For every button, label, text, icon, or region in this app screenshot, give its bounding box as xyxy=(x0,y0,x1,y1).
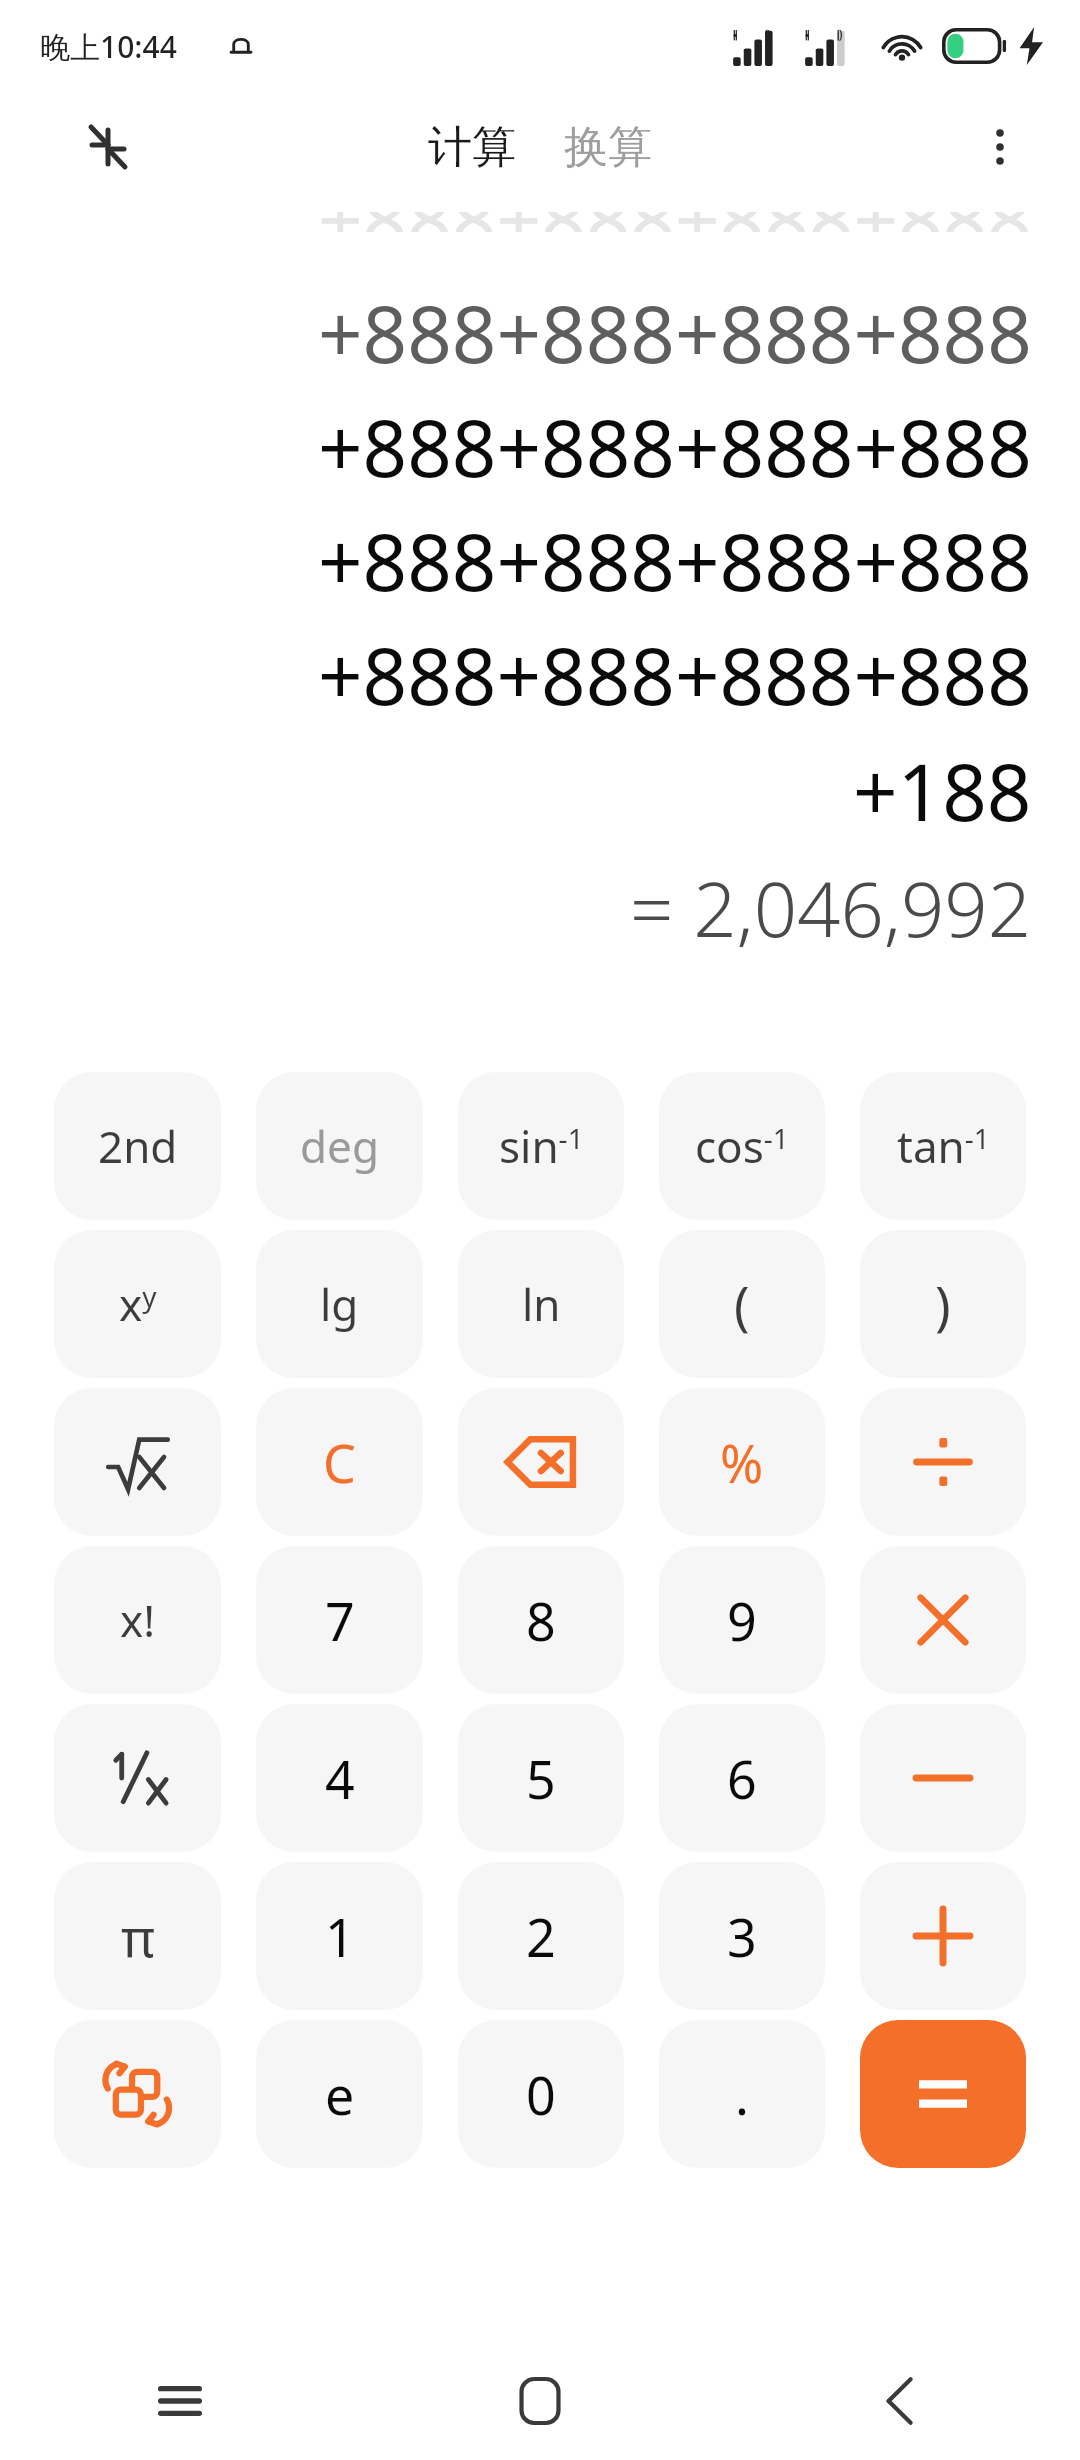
button[interactable]: x! xyxy=(54,1546,221,1694)
staticText: 换算 xyxy=(564,120,652,175)
staticText: lg xyxy=(320,1274,359,1334)
button[interactable]: 3 xyxy=(659,1862,825,2010)
button[interactable]: Backspace xyxy=(458,1388,624,1536)
staticText: 2nd xyxy=(98,1116,178,1176)
button[interactable]: Equals xyxy=(860,2020,1026,2168)
button[interactable]: Unit conversion xyxy=(54,2020,221,2168)
button[interactable]: C xyxy=(256,1388,423,1536)
button[interactable]: Square root xyxy=(54,1388,221,1536)
staticText: 6 xyxy=(727,1743,757,1814)
staticText: +888+888+888+888 xyxy=(318,280,1032,386)
staticText: = 2,046,992 xyxy=(630,856,1032,960)
staticText: 5 xyxy=(526,1743,556,1814)
button[interactable]: 8 xyxy=(458,1546,624,1694)
button[interactable]: 换算 xyxy=(554,112,662,183)
staticText: tan-1 xyxy=(897,1116,990,1176)
button[interactable]: Recent apps xyxy=(0,2342,360,2460)
button[interactable]: Divide xyxy=(860,1388,1026,1536)
button[interactable]: Plus xyxy=(860,1862,1026,2010)
button[interactable]: 2nd xyxy=(54,1072,221,1220)
staticText: 0 xyxy=(526,2059,556,2130)
staticText: 2 xyxy=(526,1901,556,1972)
staticText: 4 xyxy=(325,1743,355,1814)
staticText: C xyxy=(323,1427,356,1498)
button[interactable]: xy xyxy=(54,1230,221,1378)
button[interactable]: sin-1 xyxy=(458,1072,624,1220)
button[interactable]: cos-1 xyxy=(659,1072,825,1220)
button[interactable]: ln xyxy=(458,1230,624,1378)
button[interactable]: tan-1 xyxy=(860,1072,1026,1220)
button[interactable]: Back xyxy=(720,2342,1080,2460)
button[interactable]: e xyxy=(256,2020,423,2168)
button[interactable]: 7 xyxy=(256,1546,423,1694)
button[interactable]: Home xyxy=(360,2342,720,2460)
button[interactable]: Multiply xyxy=(860,1546,1026,1694)
button[interactable]: π xyxy=(54,1862,221,2010)
button[interactable]: deg xyxy=(256,1072,423,1220)
staticText: 3 xyxy=(727,1901,757,1972)
staticText: +888+888+888+888 xyxy=(318,212,1032,232)
staticText: 计算 xyxy=(428,120,516,175)
staticText: +188 xyxy=(853,738,1032,844)
button[interactable]: ) xyxy=(860,1230,1026,1378)
button[interactable]: 5 xyxy=(458,1704,624,1852)
staticText: ( xyxy=(734,1269,750,1340)
button[interactable]: 4 xyxy=(256,1704,423,1852)
staticText: 8 xyxy=(526,1585,556,1656)
staticText: 7 xyxy=(325,1585,355,1656)
staticText: +888+888+888+888 xyxy=(318,394,1032,500)
staticText: π xyxy=(121,1901,155,1972)
button[interactable]: 6 xyxy=(659,1704,825,1852)
button[interactable]: . xyxy=(659,2020,825,2168)
staticText: ln xyxy=(522,1274,561,1334)
button[interactable]: lg xyxy=(256,1230,423,1378)
button[interactable]: 1 xyxy=(256,1862,423,2010)
button[interactable]: 0 xyxy=(458,2020,624,2168)
staticText: ) xyxy=(935,1269,951,1340)
staticText: sin-1 xyxy=(499,1116,584,1176)
button[interactable]: Minus xyxy=(860,1704,1026,1852)
staticText: % xyxy=(720,1427,764,1498)
button[interactable] xyxy=(54,1704,221,1852)
button[interactable]: 2 xyxy=(458,1862,624,2010)
staticText: x! xyxy=(120,1590,156,1650)
staticText: e xyxy=(325,2059,355,2130)
staticText: +888+888+888+888 xyxy=(318,508,1032,614)
staticText: xy xyxy=(119,1274,157,1334)
button[interactable]: 9 xyxy=(659,1546,825,1694)
staticText: deg xyxy=(300,1116,379,1176)
button[interactable]: % xyxy=(659,1388,825,1536)
staticText: 9 xyxy=(727,1585,757,1656)
staticText: 1 xyxy=(325,1901,355,1972)
button[interactable]: Collapse xyxy=(72,111,144,183)
button[interactable]: 计算 xyxy=(418,112,526,183)
staticText: cos-1 xyxy=(695,1116,789,1176)
button[interactable]: More options xyxy=(964,111,1036,183)
button[interactable]: ( xyxy=(659,1230,825,1378)
staticText: 晚上10:44 xyxy=(40,26,177,67)
staticText: +888+888+888+888 xyxy=(318,622,1032,728)
staticText: . xyxy=(735,2059,749,2130)
